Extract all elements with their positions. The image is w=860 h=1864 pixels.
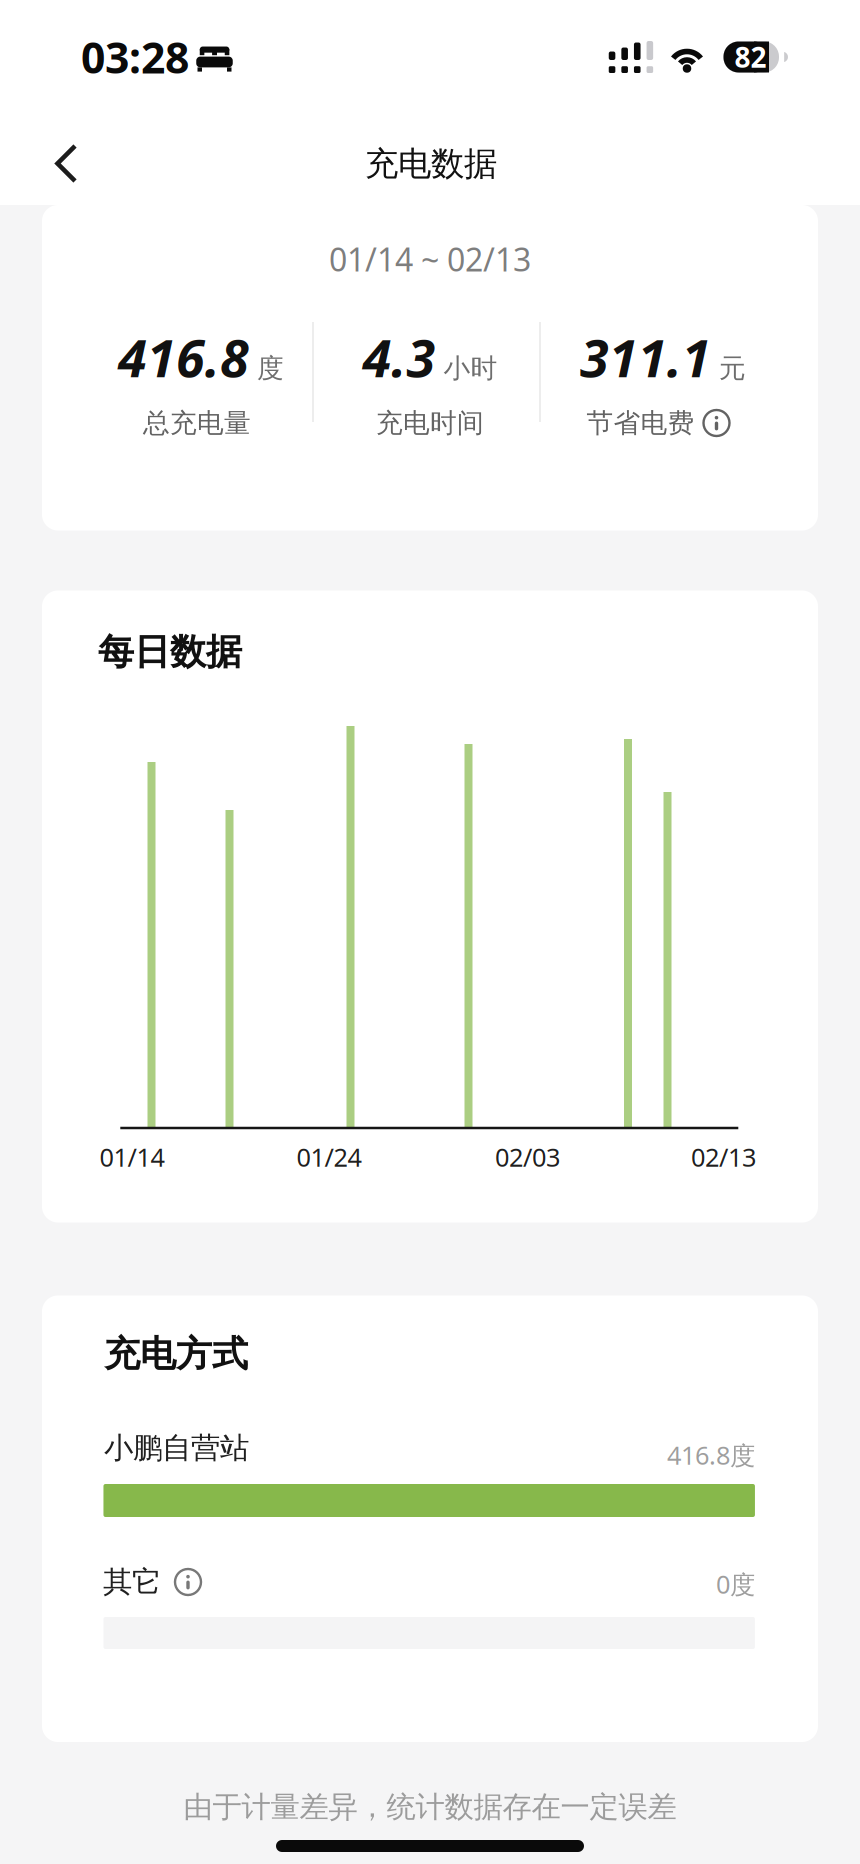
staticText: 充电时间 bbox=[376, 407, 484, 439]
button[interactable] bbox=[175, 1569, 201, 1595]
staticText: 小时 bbox=[443, 352, 497, 385]
staticText: 4.3 bbox=[362, 322, 435, 392]
staticText: 0度 bbox=[716, 1567, 755, 1601]
button[interactable] bbox=[44, 141, 88, 185]
staticText: 元 bbox=[719, 352, 746, 385]
staticText: 416.8度 bbox=[667, 1438, 755, 1472]
staticText: 充电方式 bbox=[104, 1332, 248, 1376]
staticText: 01/24 bbox=[296, 1140, 361, 1174]
staticText: 充电数据 bbox=[365, 143, 497, 184]
staticText: 02/13 bbox=[691, 1140, 756, 1174]
staticText: 82 bbox=[734, 38, 766, 75]
staticText: 小鹏自营站 bbox=[104, 1430, 249, 1466]
staticText: 416.8 bbox=[118, 322, 249, 392]
staticText: 01/14 ~ 02/13 bbox=[329, 238, 531, 280]
button[interactable] bbox=[703, 410, 729, 436]
staticText: 311.1 bbox=[580, 322, 711, 392]
staticText: 度 bbox=[257, 352, 284, 385]
staticText: 其它 bbox=[103, 1564, 161, 1600]
staticText: 节省电费 bbox=[586, 407, 694, 439]
staticText: 01/14 bbox=[99, 1140, 164, 1174]
staticText: 总充电量 bbox=[143, 407, 251, 439]
staticText: 02/03 bbox=[495, 1140, 560, 1174]
staticText: 由于计量差异，统计数据存在一定误差 bbox=[183, 1789, 676, 1825]
staticText: 03:28 bbox=[81, 29, 189, 85]
staticText: 每日数据 bbox=[98, 630, 242, 674]
